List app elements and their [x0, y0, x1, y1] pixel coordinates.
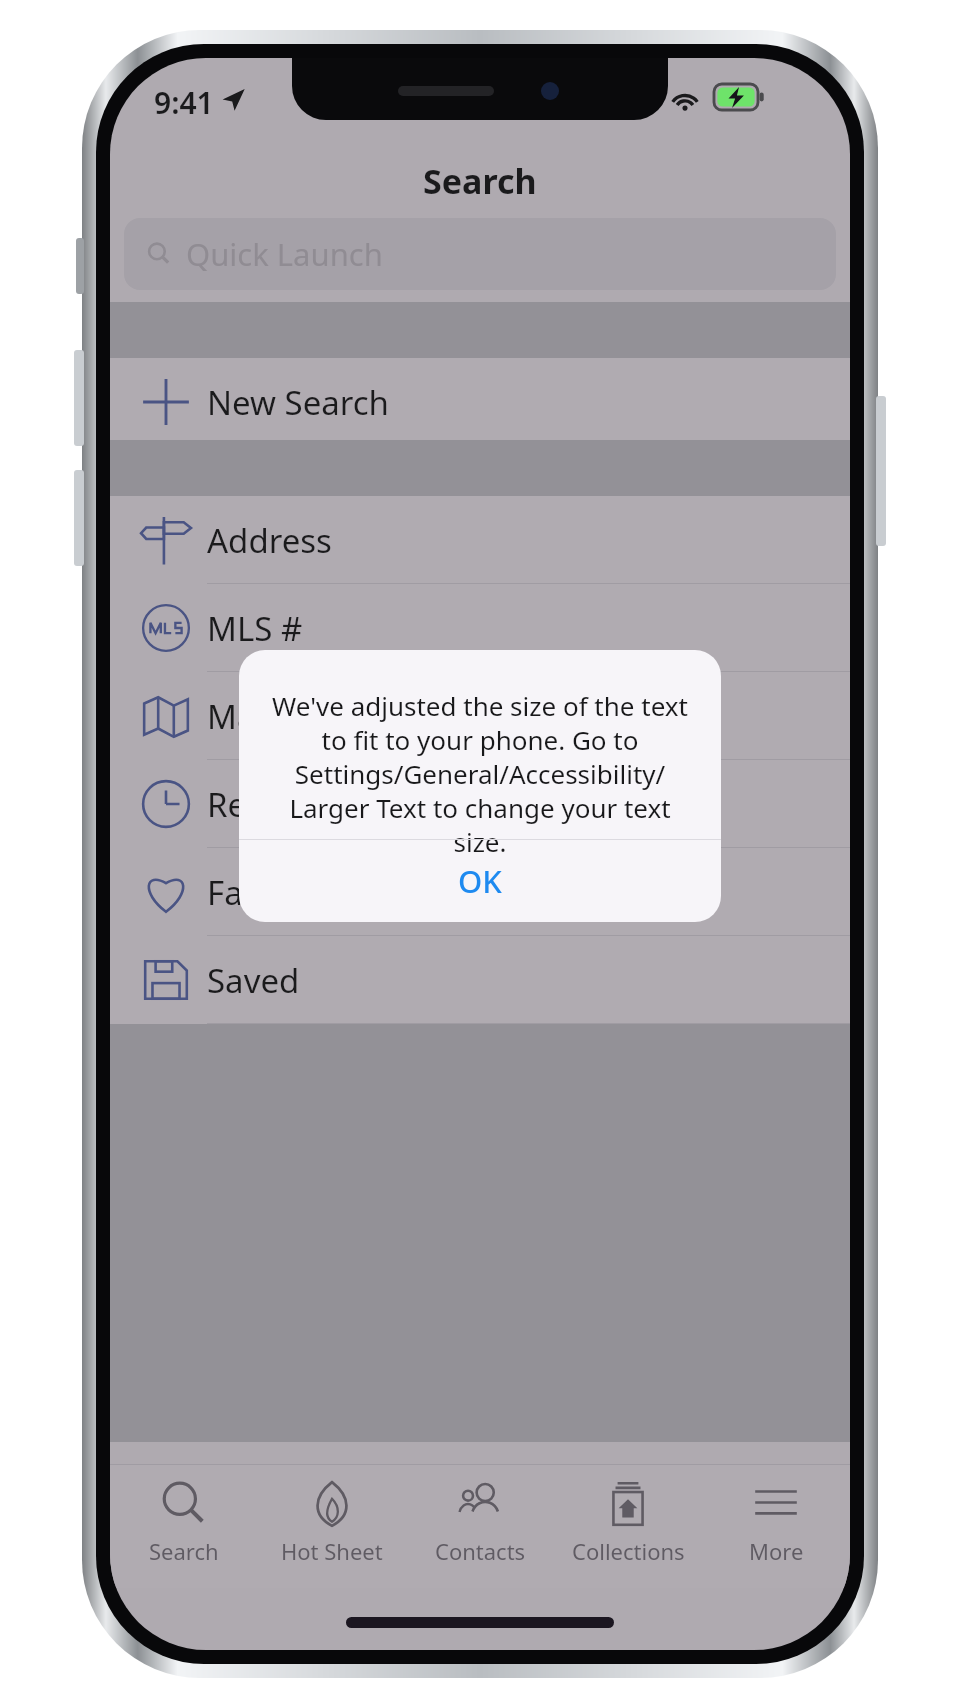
staticText: Map: [207, 694, 276, 739]
button[interactable]: Favorites: [110, 848, 850, 936]
button[interactable]: Quick Launch: [124, 218, 836, 290]
button[interactable]: Saved: [110, 936, 850, 1024]
staticText: New Search: [207, 380, 389, 425]
staticText: MLS #: [207, 606, 303, 651]
staticText: 9:41: [154, 82, 214, 123]
staticText: Favorites: [207, 870, 348, 915]
button[interactable]: Contacts: [406, 1464, 554, 1588]
staticText: Collections: [572, 1536, 685, 1566]
staticText: Address: [207, 518, 332, 563]
button[interactable]: Collections: [554, 1464, 702, 1588]
staticText: Search: [149, 1536, 219, 1566]
button[interactable]: Search: [110, 1464, 258, 1588]
staticText: More: [749, 1536, 804, 1566]
staticText: Saved: [207, 958, 300, 1003]
button[interactable]: OK: [239, 840, 721, 922]
staticText: Search: [423, 158, 537, 204]
button[interactable]: More: [702, 1464, 850, 1588]
staticText: Contacts: [435, 1536, 526, 1566]
staticText: Quick Launch: [186, 233, 383, 275]
button[interactable]: Map: [110, 672, 850, 760]
button[interactable]: New Search: [110, 358, 850, 446]
button[interactable]: Address: [110, 496, 850, 584]
staticText: OK: [458, 860, 502, 902]
button[interactable]: MLS #: [110, 584, 850, 672]
staticText: We've adjusted the size of the text to f…: [265, 688, 695, 859]
button[interactable]: Recent: [110, 760, 850, 848]
staticText: Hot Sheet: [281, 1536, 383, 1566]
button[interactable]: Hot Sheet: [258, 1464, 406, 1588]
staticText: Recent: [207, 782, 313, 827]
